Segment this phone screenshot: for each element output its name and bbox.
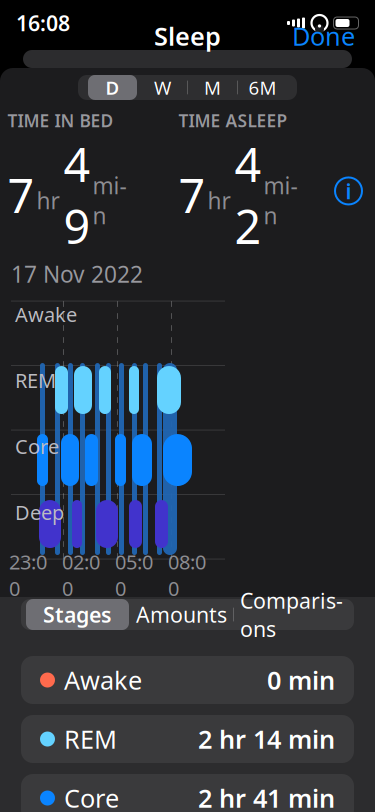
staticText: hr bbox=[36, 185, 59, 215]
staticText: i bbox=[345, 177, 351, 205]
staticText: 0 min bbox=[267, 663, 335, 697]
staticText: 16:08 bbox=[16, 9, 70, 37]
staticText: W bbox=[154, 75, 171, 100]
button[interactable]: M bbox=[188, 75, 237, 100]
staticText: Amounts bbox=[136, 600, 227, 629]
staticText: TIME IN BED bbox=[7, 109, 113, 132]
button[interactable]: Done bbox=[282, 11, 365, 61]
staticText: Sleep bbox=[154, 19, 221, 53]
button[interactable]: 6M bbox=[238, 75, 287, 100]
button[interactable]: REM bbox=[21, 715, 354, 763]
staticText: min bbox=[92, 170, 126, 231]
staticText: D bbox=[105, 75, 119, 100]
staticText: M bbox=[204, 75, 221, 100]
staticText: 2 hr 41 min bbox=[198, 781, 335, 812]
staticText: Deep bbox=[15, 499, 64, 526]
staticText: Core bbox=[64, 781, 119, 812]
button[interactable]: W bbox=[138, 75, 187, 100]
staticText: Done bbox=[292, 19, 355, 53]
button[interactable]: Comparisons bbox=[234, 599, 349, 630]
staticText: min bbox=[263, 170, 297, 231]
staticText: 6M bbox=[248, 75, 276, 100]
staticText: Done bbox=[20, 19, 83, 53]
staticText: 02:00 bbox=[62, 548, 100, 602]
staticText: 49 bbox=[63, 133, 90, 257]
staticText: 42 bbox=[234, 133, 261, 257]
staticText: 7 bbox=[178, 164, 205, 226]
button[interactable]: D bbox=[88, 75, 137, 100]
staticText: 05:00 bbox=[115, 548, 153, 602]
staticText: Core bbox=[15, 433, 59, 460]
staticText: Awake bbox=[64, 663, 142, 697]
button[interactable]: Stages bbox=[26, 599, 129, 630]
staticText: 7 bbox=[7, 164, 34, 226]
staticText: 2 hr 14 min bbox=[198, 722, 335, 756]
button[interactable]: Core bbox=[21, 774, 354, 812]
staticText: 17 Nov 2022 bbox=[11, 259, 143, 289]
staticText: 08:00 bbox=[168, 548, 206, 602]
staticText: REM bbox=[64, 722, 117, 756]
staticText: Stages bbox=[43, 600, 112, 629]
button[interactable]: Amounts bbox=[130, 599, 233, 630]
staticText: hr bbox=[207, 185, 230, 215]
staticText: Comparisons bbox=[240, 586, 343, 643]
staticText: REM bbox=[15, 367, 56, 394]
button[interactable]: About this data bbox=[331, 174, 365, 208]
staticText: TIME ASLEEP bbox=[178, 109, 287, 132]
staticText: 23:00 bbox=[9, 548, 47, 602]
staticText: Awake bbox=[15, 301, 77, 328]
button[interactable]: Awake bbox=[21, 656, 354, 704]
